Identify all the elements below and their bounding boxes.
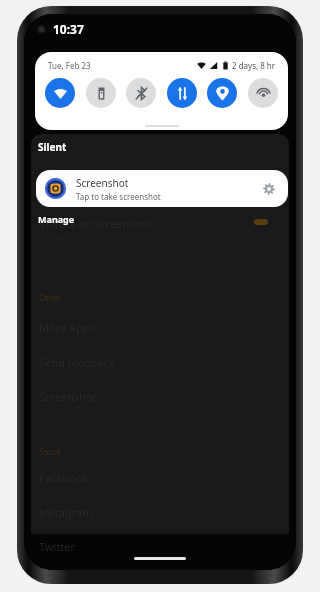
staticText: Tue, Feb 23 — [48, 60, 91, 71]
staticText: Instagram — [39, 505, 93, 520]
button[interactable]: Bluetooth — [126, 78, 156, 108]
button[interactable]: Notification settings — [259, 179, 279, 199]
button[interactable]: Mobile data — [167, 78, 197, 108]
staticText: Other — [39, 292, 61, 303]
staticText: Vibrate on screenshot — [39, 216, 152, 231]
staticText: Social — [39, 446, 61, 457]
staticText: 10:37 — [53, 21, 84, 37]
button[interactable]: Screenshot — [36, 170, 288, 207]
button[interactable]: Hotspot — [248, 78, 278, 108]
staticText: Send feedback — [39, 355, 115, 370]
button[interactable]: Wi-Fi — [45, 78, 75, 108]
staticText: Facebook — [39, 470, 89, 485]
staticText: Screenshot — [76, 176, 129, 190]
button[interactable]: Location — [207, 78, 237, 108]
staticText: Manage — [38, 213, 75, 225]
button[interactable]: Flashlight — [86, 78, 116, 108]
staticText: Screenshot — [39, 389, 97, 404]
staticText: More Apps — [39, 320, 95, 335]
staticText: Tap to take screenshot — [76, 191, 161, 202]
staticText: Silent — [38, 140, 67, 154]
staticText: Twitter — [39, 539, 76, 554]
staticText: 2 days, 8 hr — [232, 60, 276, 71]
